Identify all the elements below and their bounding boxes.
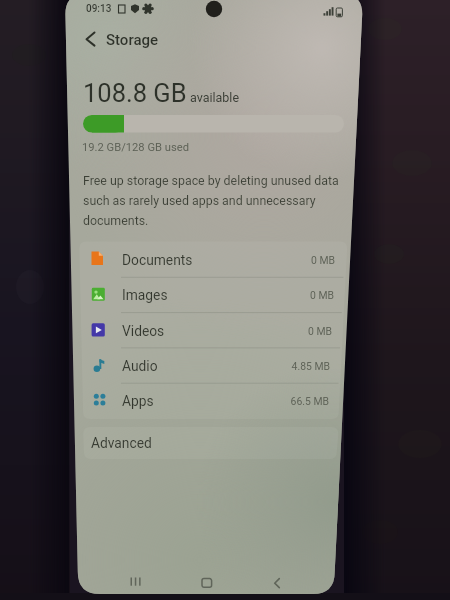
button[interactable] [82, 348, 341, 383]
staticText: 0 MB [0, 325, 332, 337]
button[interactable] [80, 242, 347, 277]
staticText: Storage [106, 31, 159, 49]
staticText: 4.85 MB [0, 360, 330, 372]
button[interactable] [78, 26, 278, 52]
staticText: such as rarely used apps and unnecessary [83, 193, 316, 208]
staticText: 66.5 MB [0, 395, 329, 407]
button[interactable] [81, 313, 343, 348]
staticText: Images [122, 287, 168, 303]
staticText: available [190, 90, 240, 105]
button[interactable]: Back [256, 568, 298, 594]
staticText: 0 MB [0, 254, 335, 266]
staticText: Videos [122, 323, 165, 339]
staticText: Free up storage space by deleting unused… [83, 173, 339, 188]
staticText: Audio [122, 358, 158, 374]
staticText: 19.2 GB/128 GB used [82, 141, 189, 154]
staticText: 108.8 GB [83, 78, 187, 108]
staticText: 0 MB [0, 289, 334, 301]
button[interactable]: Home [187, 568, 229, 594]
button[interactable]: Recents [115, 568, 157, 594]
button[interactable] [84, 427, 338, 459]
staticText: Advanced [91, 435, 152, 451]
staticText: Documents [122, 252, 193, 268]
staticText: documents. [83, 213, 149, 228]
button[interactable] [80, 277, 344, 312]
button[interactable] [83, 383, 340, 418]
button[interactable]: Navigate up [78, 26, 104, 52]
staticText: 09:13 [86, 3, 112, 15]
staticText: Apps [122, 393, 154, 409]
